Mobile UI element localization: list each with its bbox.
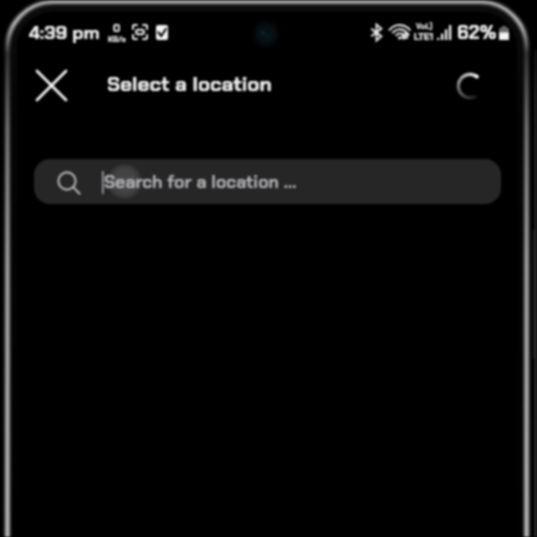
staticText: VoL) [416, 21, 433, 31]
button[interactable]: Close [23, 57, 79, 113]
staticText: LTE1 [414, 31, 434, 43]
button[interactable]: Search for a location ... [34, 159, 501, 204]
staticText: 62% [457, 20, 497, 45]
staticText: Select a location [107, 71, 272, 98]
staticText: 4:39 pm [29, 20, 100, 44]
staticText: KB/s [108, 35, 126, 45]
staticText: Search for a location ... [104, 171, 297, 194]
button[interactable]: Refresh [448, 64, 492, 108]
staticText: 0 [113, 21, 121, 35]
